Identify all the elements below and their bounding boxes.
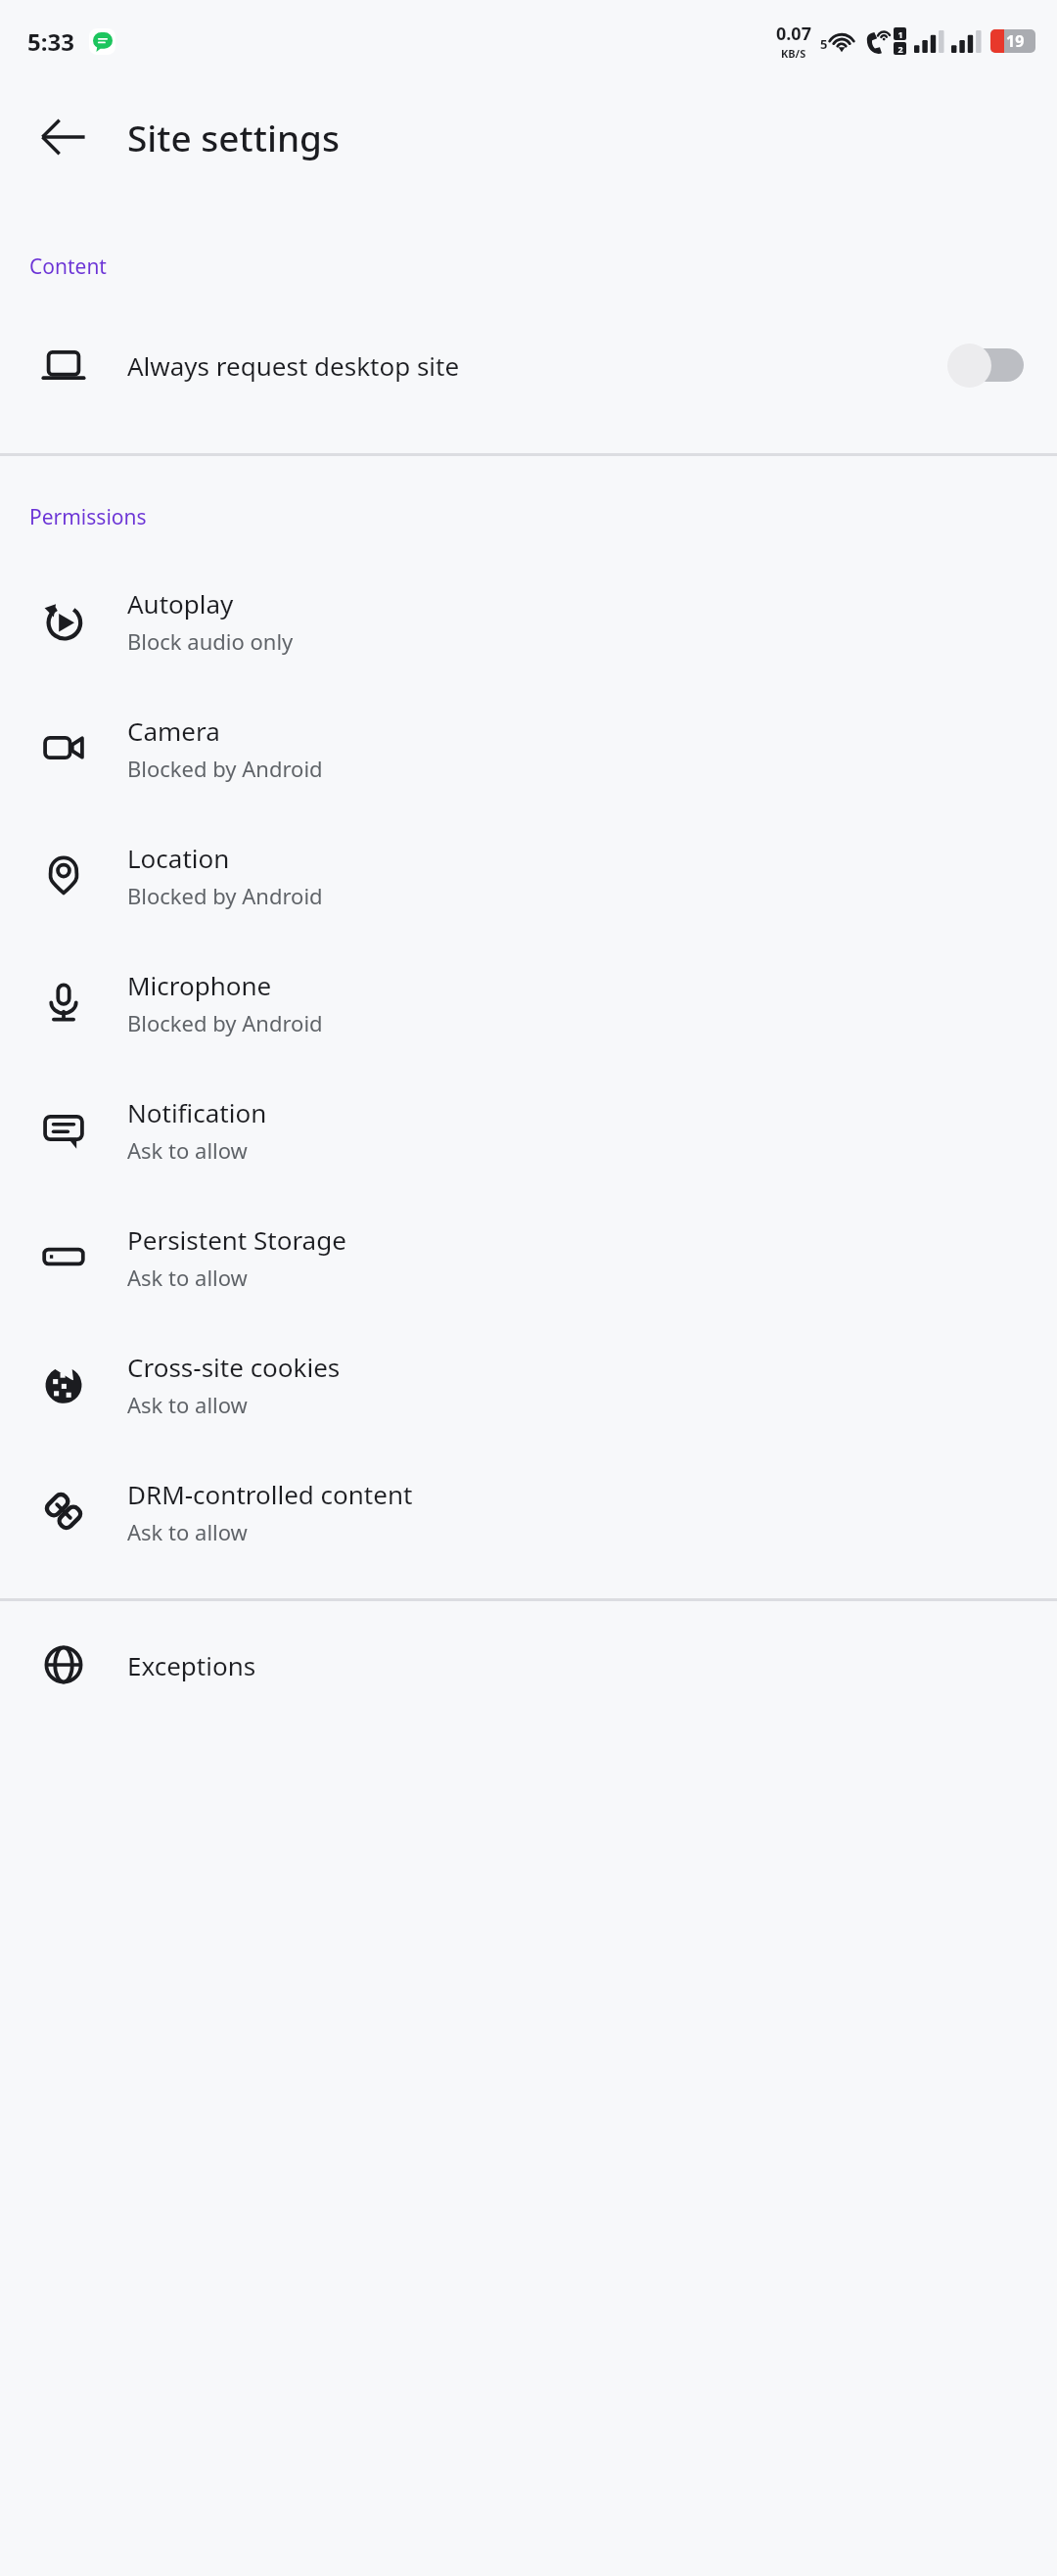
staticText: Blocked by Android bbox=[127, 881, 323, 910]
button[interactable]: Persistent Storage bbox=[0, 1193, 1057, 1320]
staticText: DRM-controlled content bbox=[127, 1477, 413, 1511]
button[interactable]: Back bbox=[0, 82, 127, 192]
button[interactable]: Exceptions bbox=[0, 1601, 1057, 1728]
staticText: 5:33 bbox=[27, 25, 74, 58]
staticText: Block audio only bbox=[127, 626, 294, 656]
staticText: Content bbox=[29, 253, 107, 281]
staticText: Always request desktop site bbox=[127, 348, 460, 383]
staticText: Microphone bbox=[127, 968, 272, 1002]
staticText: Blocked by Android bbox=[127, 1008, 323, 1037]
staticText: Cross-site cookies bbox=[127, 1350, 341, 1384]
staticText: Ask to allow bbox=[127, 1263, 248, 1292]
button[interactable]: Always request desktop site bbox=[0, 318, 1057, 412]
staticText: KB/S bbox=[781, 46, 806, 61]
staticText: Ask to allow bbox=[127, 1135, 248, 1165]
button[interactable]: Cross-site cookies bbox=[0, 1320, 1057, 1448]
button[interactable]: Notification bbox=[0, 1066, 1057, 1193]
button[interactable]: Microphone bbox=[0, 939, 1057, 1066]
staticText: Location bbox=[127, 841, 230, 875]
button[interactable]: Camera bbox=[0, 684, 1057, 811]
staticText: Camera bbox=[127, 713, 220, 748]
button[interactable]: Always request desktop site toggle bbox=[947, 342, 1026, 389]
button[interactable]: Autoplay bbox=[0, 557, 1057, 684]
staticText: 2 bbox=[897, 43, 903, 55]
staticText: Ask to allow bbox=[127, 1517, 248, 1546]
staticText: Permissions bbox=[29, 503, 147, 531]
button[interactable]: DRM-controlled content bbox=[0, 1448, 1057, 1575]
staticText: 5 bbox=[820, 35, 828, 53]
button[interactable]: Location bbox=[0, 811, 1057, 939]
staticText: Notification bbox=[127, 1095, 267, 1129]
staticText: Exceptions bbox=[127, 1648, 256, 1682]
staticText: Autoplay bbox=[127, 586, 234, 621]
staticText: Ask to allow bbox=[127, 1390, 248, 1419]
staticText: Site settings bbox=[127, 113, 341, 161]
staticText: 0.07 bbox=[776, 22, 811, 46]
staticText: Blocked by Android bbox=[127, 754, 323, 783]
staticText: 19 bbox=[1006, 30, 1025, 52]
staticText: 1 bbox=[897, 28, 903, 40]
staticText: Persistent Storage bbox=[127, 1222, 346, 1257]
